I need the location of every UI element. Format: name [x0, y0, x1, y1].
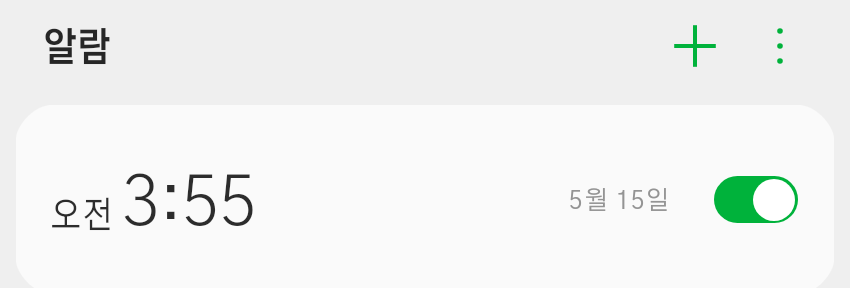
staticText: 5월 15일 [569, 188, 671, 214]
staticText: 알람 [43, 30, 112, 69]
staticText: 오전 [51, 198, 114, 236]
button[interactable]: More options [746, 12, 814, 80]
staticText: 3:55 [122, 169, 257, 239]
button[interactable]: 알람 [30, 14, 130, 76]
button[interactable]: Add alarm [661, 12, 729, 80]
button[interactable]: 오전 [16, 105, 834, 288]
button[interactable]: Alarm enabled [714, 176, 798, 223]
